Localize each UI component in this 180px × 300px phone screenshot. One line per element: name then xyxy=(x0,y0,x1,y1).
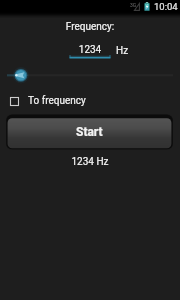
staticText: 1234 xyxy=(69,44,111,56)
button[interactable]: To frequency xyxy=(0,93,180,109)
staticText: Start xyxy=(76,125,103,139)
staticText: 3G xyxy=(130,2,137,8)
staticText: 1234 Hz xyxy=(0,156,180,168)
button[interactable]: Start xyxy=(5,112,174,152)
staticText: Hz xyxy=(116,45,129,57)
other: Battery xyxy=(144,2,150,11)
staticText: Frequency: xyxy=(0,21,180,33)
staticText: To frequency xyxy=(28,95,86,107)
staticText: 10:04 xyxy=(154,1,178,12)
button[interactable]: Frequency slider xyxy=(0,64,180,88)
other: Signal strength xyxy=(134,3,140,11)
